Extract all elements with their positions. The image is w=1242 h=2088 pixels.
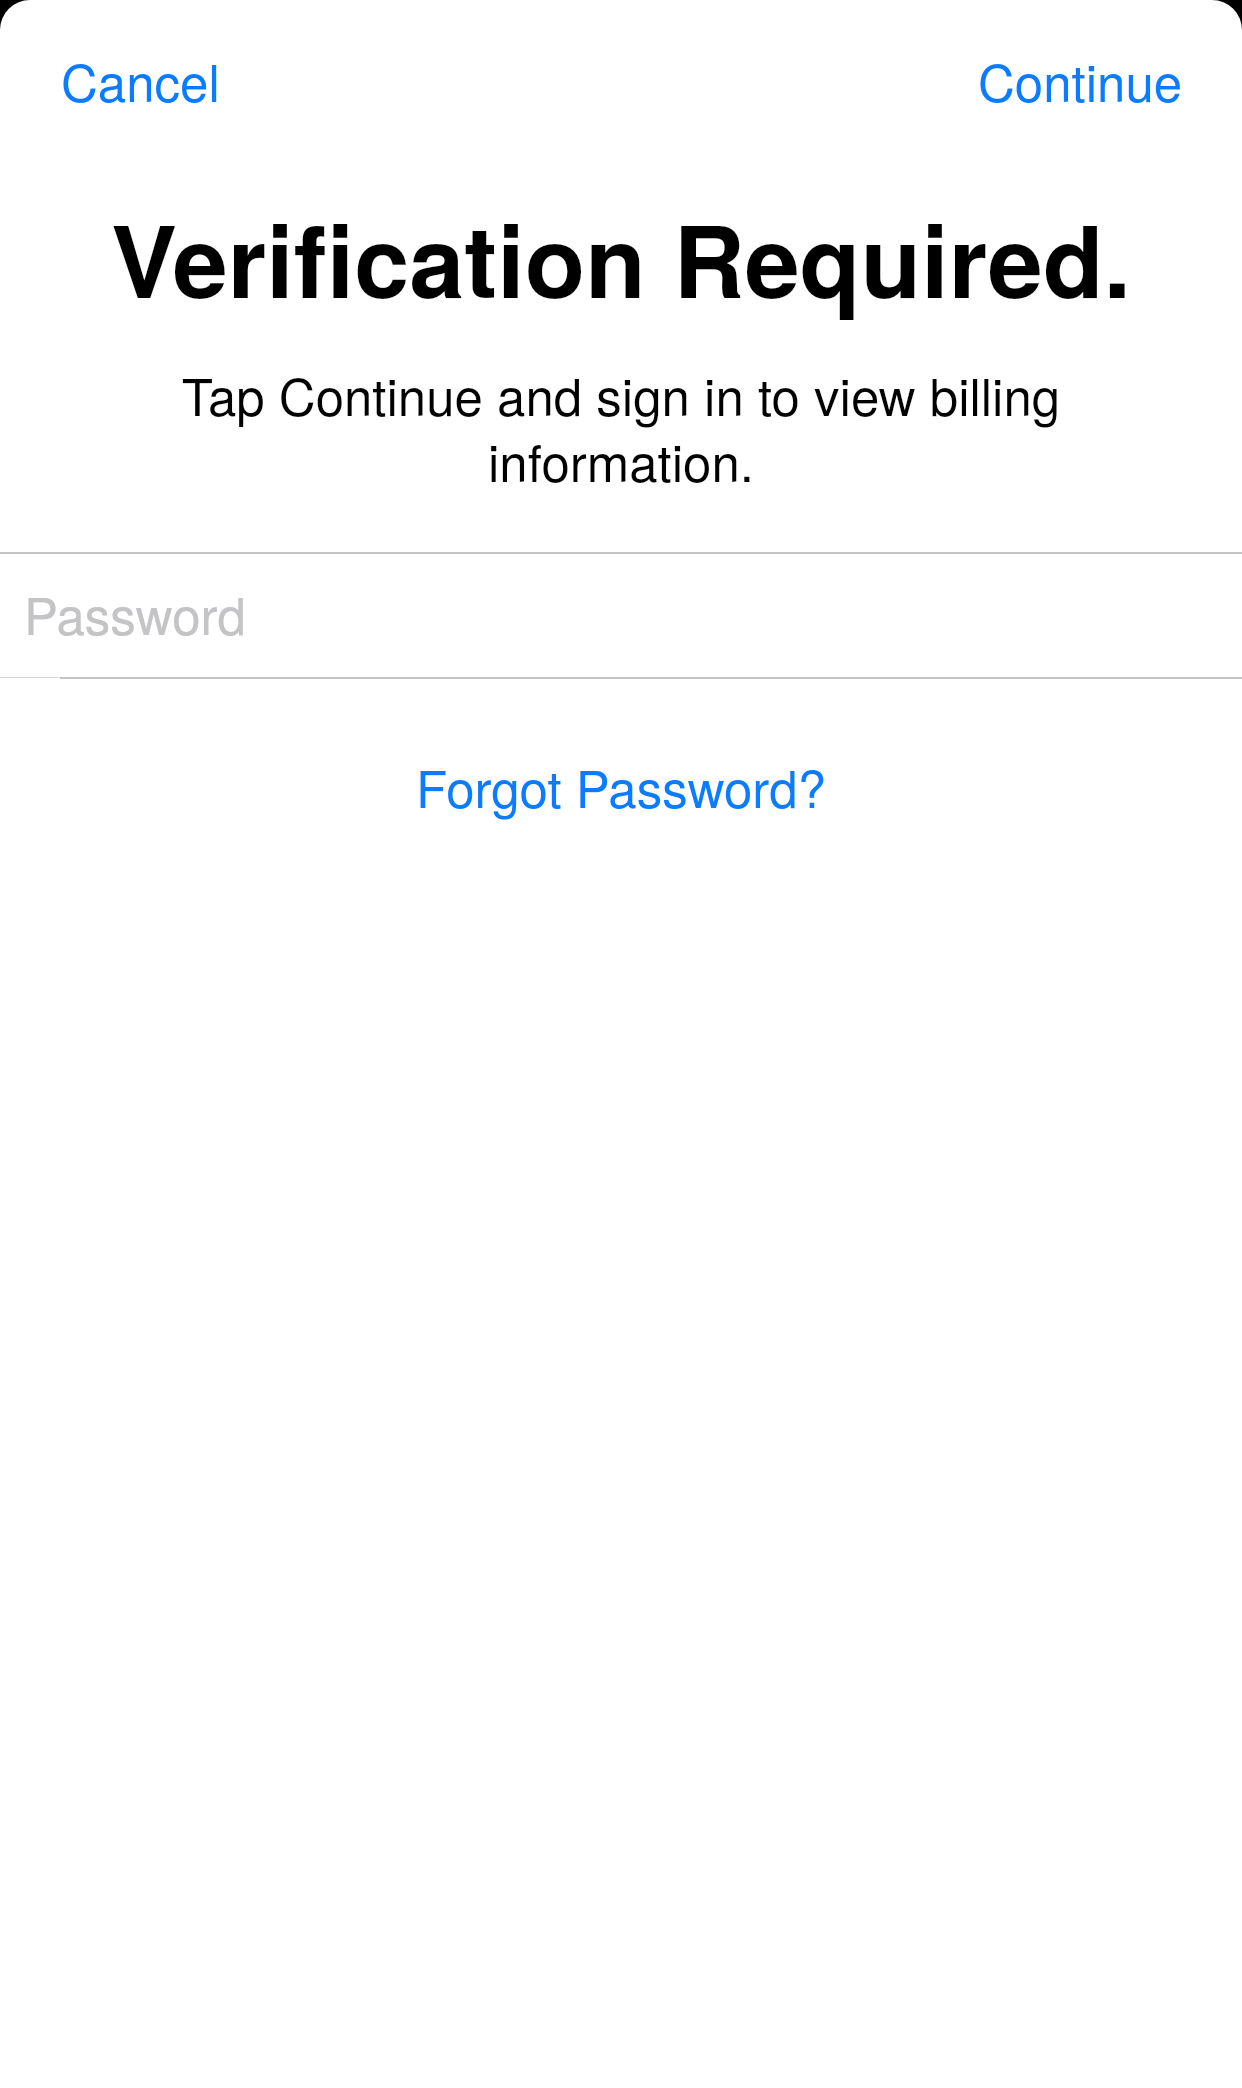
button[interactable]: Password: [0, 554, 1242, 678]
staticText: Tap Continue and sign in to view billing…: [60, 357, 1182, 496]
staticText: Forgot Password?: [416, 749, 826, 822]
button[interactable]: Forgot Password?: [376, 709, 866, 862]
staticText: Verification Required.: [0, 187, 1242, 329]
staticText: Password: [24, 576, 246, 649]
staticText: Continue: [978, 43, 1183, 116]
button[interactable]: Continue: [938, 3, 1223, 156]
staticText: Cancel: [61, 43, 220, 116]
button[interactable]: Cancel: [21, 3, 260, 156]
